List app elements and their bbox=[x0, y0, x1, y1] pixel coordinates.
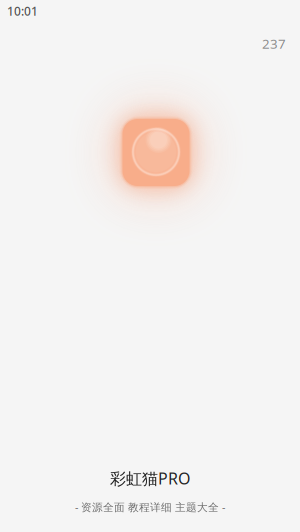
staticText: 彩虹猫PRO bbox=[110, 468, 190, 489]
staticText: 10:01 bbox=[7, 3, 38, 19]
staticText: - 资源全面 教程详细 主题大全 - bbox=[75, 500, 225, 514]
button[interactable]: Skip bbox=[262, 35, 286, 52]
staticText: 237 bbox=[262, 35, 286, 52]
